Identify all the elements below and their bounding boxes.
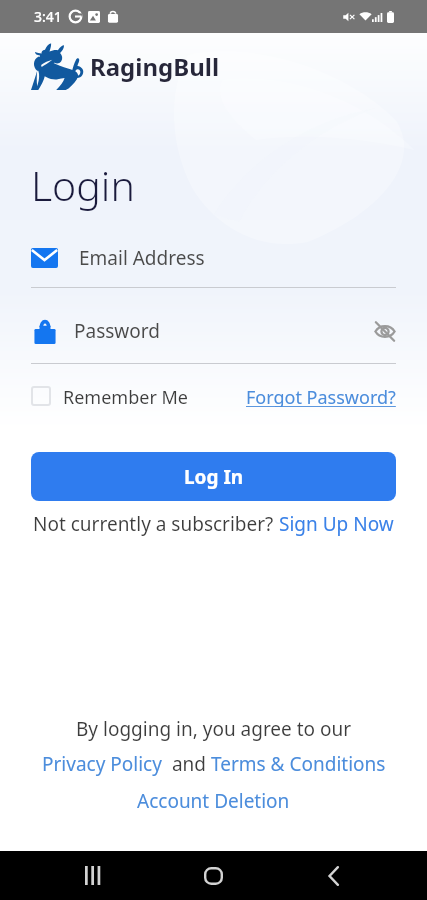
button[interactable]: Sign Up Now [279, 511, 394, 537]
button[interactable]: Back [273, 851, 393, 900]
staticText: RagingBull [90, 50, 220, 83]
button[interactable]: Home [153, 851, 273, 900]
staticText: Remember Me [63, 385, 188, 407]
button[interactable]: Recent apps [34, 851, 153, 900]
button[interactable]: Show password [370, 316, 400, 346]
staticText: Password [74, 318, 160, 344]
staticText: Login [31, 157, 135, 213]
button[interactable]: Terms & Conditions [211, 751, 386, 777]
button[interactable]: Remember Me [31, 385, 188, 407]
staticText: and [162, 751, 211, 777]
staticText: Not currently a subscriber? [33, 511, 279, 537]
staticText: By logging in, you agree to our [76, 716, 352, 742]
button[interactable]: Log In [31, 452, 396, 501]
staticText: 3:41 [34, 7, 62, 26]
button[interactable]: Forgot Password? [246, 385, 396, 407]
button[interactable]: Account Deletion [137, 788, 290, 814]
staticText: Log In [184, 464, 244, 490]
staticText: Email Address [79, 245, 205, 271]
button[interactable]: Privacy Policy [42, 751, 162, 777]
